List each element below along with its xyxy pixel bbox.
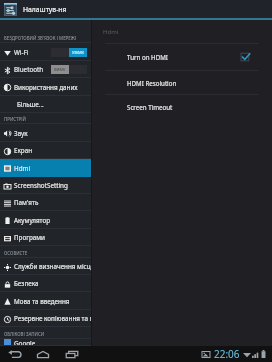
staticText: УВІМК [72, 50, 84, 55]
staticText: Резервне копіювання та відновлення [14, 314, 91, 323]
staticText: Hdmi [14, 164, 91, 173]
staticText: Звук [14, 129, 91, 138]
staticText: ОСОБИСТЕ [4, 250, 28, 256]
staticText: Мова та введення [14, 297, 91, 306]
staticText: Screen Timeout [127, 103, 251, 111]
staticText: HDMI Resolution [127, 79, 251, 87]
button[interactable]: Акумулятор [0, 211, 91, 229]
button[interactable]: Recents [64, 347, 79, 361]
staticText: Пам'ять [14, 198, 91, 207]
staticText: Google [14, 339, 91, 346]
staticText: ОБЛІКОВІ ЗАПИСИ [4, 331, 45, 337]
button[interactable]: Програми [0, 229, 91, 246]
staticText: Служби визначення місцезнаходження [14, 262, 91, 271]
button[interactable]: Wi-Fi [0, 43, 91, 61]
button[interactable]: Back [6, 347, 23, 361]
staticText: Налаштув-ня [23, 5, 67, 14]
staticText: ПРИСТРІЙ [4, 116, 26, 122]
button[interactable]: ScreenshotSetting [0, 177, 91, 194]
button[interactable]: Екран [0, 142, 91, 159]
staticText: Програми [14, 233, 91, 242]
button[interactable]: Screen Timeout [92, 95, 272, 118]
staticText: Turn on HDMI [127, 53, 241, 61]
button[interactable]: Bluetooth [0, 61, 91, 78]
button[interactable]: Settings [3, 2, 18, 17]
staticText: Акумулятор [14, 216, 91, 225]
button[interactable]: Turn on HDMI [92, 44, 272, 70]
button[interactable]: Безпека [0, 275, 91, 292]
button[interactable]: Використання даних [0, 78, 91, 96]
button[interactable]: Резервне копіювання та відновлення [0, 310, 91, 327]
staticText: Bluetooth [14, 65, 51, 74]
staticText: Більше... [17, 100, 91, 109]
button[interactable]: Служби визначення місцезнаходження [0, 258, 91, 275]
button[interactable]: Пам'ять [0, 194, 91, 211]
staticText: ScreenshotSetting [14, 181, 91, 190]
staticText: БЕЗДРОТОВИЙ ЗВ'ЯЗОК І МЕРЕЖІ [4, 35, 77, 41]
button[interactable]: Мова та введення [0, 292, 91, 310]
staticText: Wi-Fi [14, 48, 51, 57]
button[interactable]: Home [35, 347, 50, 361]
staticText: Використання даних [14, 83, 91, 92]
staticText: 22:06 [214, 347, 240, 361]
staticText: Hdmi [103, 28, 119, 36]
button[interactable]: Hdmi [0, 159, 91, 177]
button[interactable]: HDMI Resolution [92, 71, 272, 94]
staticText: Екран [14, 146, 91, 155]
staticText: ВИМК [54, 67, 66, 72]
button[interactable]: Звук [0, 124, 91, 142]
staticText: Безпека [14, 279, 91, 288]
button[interactable]: Більше... [0, 96, 91, 113]
button[interactable]: Google [0, 339, 91, 346]
